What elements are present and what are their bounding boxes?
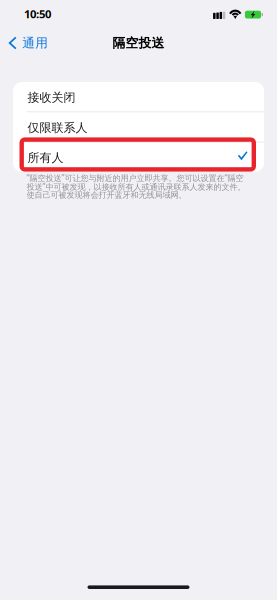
staticText: 所有人 xyxy=(27,150,63,165)
button[interactable]: 仅限联系人 xyxy=(13,112,264,142)
staticText: 通用 xyxy=(22,35,48,51)
staticText: 10:50 xyxy=(24,6,51,21)
button[interactable]: 通用 xyxy=(0,32,54,54)
staticText: “隔空投送”可让您与附近的用户立即共享。您可以设置在“隔空投送”中可被发现，以接… xyxy=(26,172,245,200)
staticText: 仅限联系人 xyxy=(27,120,87,135)
button[interactable]: 所有人 xyxy=(13,142,264,172)
staticText: 接收关闭 xyxy=(27,90,75,105)
staticText: 隔空投送 xyxy=(112,35,164,51)
button[interactable]: 接收关闭 xyxy=(13,82,264,112)
